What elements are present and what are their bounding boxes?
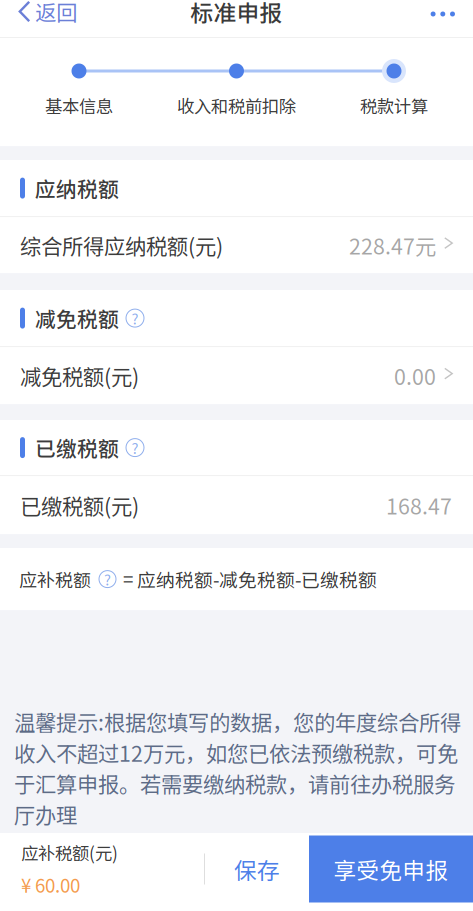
button[interactable]: 保存: [205, 833, 309, 904]
button[interactable]: 返回: [0, 0, 91, 23]
staticText: ¥ 60.00: [21, 871, 80, 898]
staticText: 168.47: [386, 490, 452, 521]
staticText: ?: [131, 437, 138, 458]
staticText: ?: [131, 307, 138, 329]
staticText: 减免税额: [35, 303, 119, 333]
staticText: 温馨提示:根据您填写的数据，您的年度综合所得收入不超过12万元，如您已依法预缴税…: [14, 706, 461, 830]
staticText: 标准申报: [190, 0, 282, 28]
staticText: 0.00: [394, 360, 436, 391]
staticText: = 应纳税额-减免税额-已缴税额: [123, 566, 377, 593]
staticText: 保存: [234, 853, 280, 885]
button[interactable]: 享受免申报: [309, 835, 473, 902]
staticText: 享受免申报: [333, 853, 448, 885]
staticText: 减免税额(元): [20, 360, 139, 391]
staticText: 返回: [35, 0, 77, 27]
staticText: 228.47元: [349, 230, 436, 261]
staticText: 应补税额(元): [21, 840, 118, 865]
staticText: 已缴税额(元): [20, 490, 139, 521]
staticText: 基本信息: [45, 93, 113, 118]
staticText: 应纳税额: [35, 173, 119, 203]
button[interactable]: 更多: [417, 0, 473, 23]
staticText: ?: [104, 568, 111, 590]
staticText: 税款计算: [360, 93, 428, 118]
staticText: 综合所得应纳税额(元): [20, 230, 223, 261]
button[interactable]: 综合所得应纳税额(元): [0, 216, 473, 273]
button[interactable]: 减免税额(元): [0, 346, 473, 404]
button[interactable]: 已缴税额(元): [0, 475, 473, 534]
staticText: 收入和税前扣除: [177, 93, 296, 118]
staticText: 已缴税额: [35, 433, 119, 462]
staticText: 应补税额: [19, 566, 91, 592]
